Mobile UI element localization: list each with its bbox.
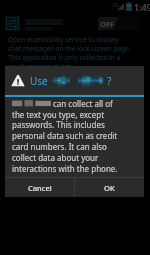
staticText: the text you type, except passwords. Thi… [12, 109, 118, 175]
staticText: Open accessibility service to display ch… [8, 35, 131, 71]
staticText: OK [104, 183, 115, 193]
staticText: ? [107, 74, 112, 88]
button[interactable]: Toggle accessibility service off [98, 17, 140, 30]
staticText: OFF [100, 19, 115, 29]
staticText: Cancel [28, 183, 52, 193]
button[interactable]: Cancel [5, 178, 74, 197]
staticText: can collect all of [53, 98, 113, 109]
staticText: 1:49 [134, 1, 150, 13]
staticText: Use [30, 74, 48, 88]
button[interactable]: Toggle accessibility service off [0, 13, 150, 34]
button[interactable]: OK [75, 178, 144, 197]
staticText: 3G [112, 1, 120, 8]
